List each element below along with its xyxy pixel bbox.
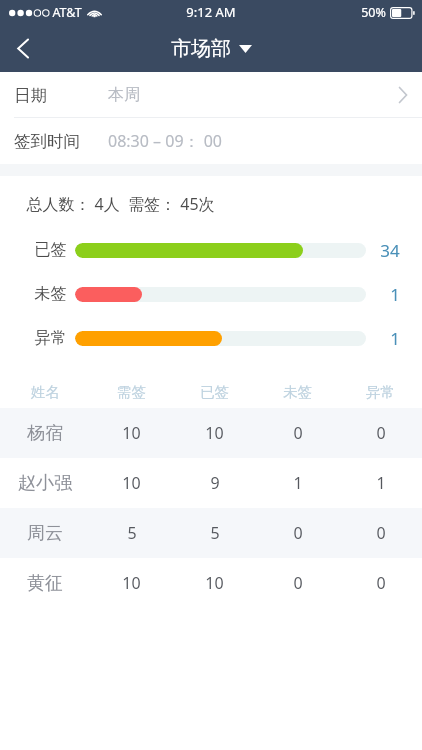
staticText: 需签 [117,383,146,401]
staticText: 1 [293,472,303,494]
staticText: 0 [293,522,303,544]
staticText: AT&T [52,4,82,21]
staticText: 50% [361,4,386,21]
staticText: 9 [210,472,220,494]
staticText: 10 [122,572,141,594]
button[interactable]: 市场部 [171,36,252,61]
staticText: 0 [376,422,386,444]
staticText: 黄征 [27,572,63,595]
staticText: 未签 [26,284,75,304]
button[interactable]: 赵小强 [0,458,422,508]
staticText: 1 [376,472,386,494]
staticText: 周云 [27,522,63,545]
button[interactable]: 周云 [0,508,422,558]
button[interactable]: Back [0,25,46,71]
staticText: 10 [205,572,224,594]
staticText: 1 [390,327,400,350]
staticText: 9:12 AM [186,3,236,21]
staticText: 34 [380,239,400,262]
button[interactable]: 黄征 [0,558,422,608]
staticText: 0 [376,522,386,544]
staticText: 赵小强 [18,472,72,495]
staticText: 姓名 [31,383,60,401]
staticText: 市场部 [171,36,231,61]
staticText: 0 [293,422,303,444]
staticText: 已签 [200,383,229,401]
staticText: 1 [390,283,400,306]
staticText: 10 [122,472,141,494]
button[interactable]: 杨宿 [0,408,422,458]
staticText: 总人数： 4人 需签： 45次 [26,193,215,215]
staticText: 0 [376,572,386,594]
staticText: 签到时间 [14,131,80,152]
staticText: 杨宿 [27,422,63,445]
staticText: 日期 [14,85,47,106]
staticText: 10 [122,422,141,444]
staticText: 08:30 – 09： 00 [108,130,222,152]
staticText: 5 [210,522,220,544]
staticText: 异常 [366,383,395,401]
staticText: 本周 [108,85,140,105]
staticText: 10 [205,422,224,444]
staticText: 5 [127,522,137,544]
staticText: 异常 [26,328,75,348]
staticText: 未签 [283,383,312,401]
staticText: 已签 [26,240,75,260]
button[interactable]: 日期 [0,72,422,118]
staticText: 0 [293,572,303,594]
